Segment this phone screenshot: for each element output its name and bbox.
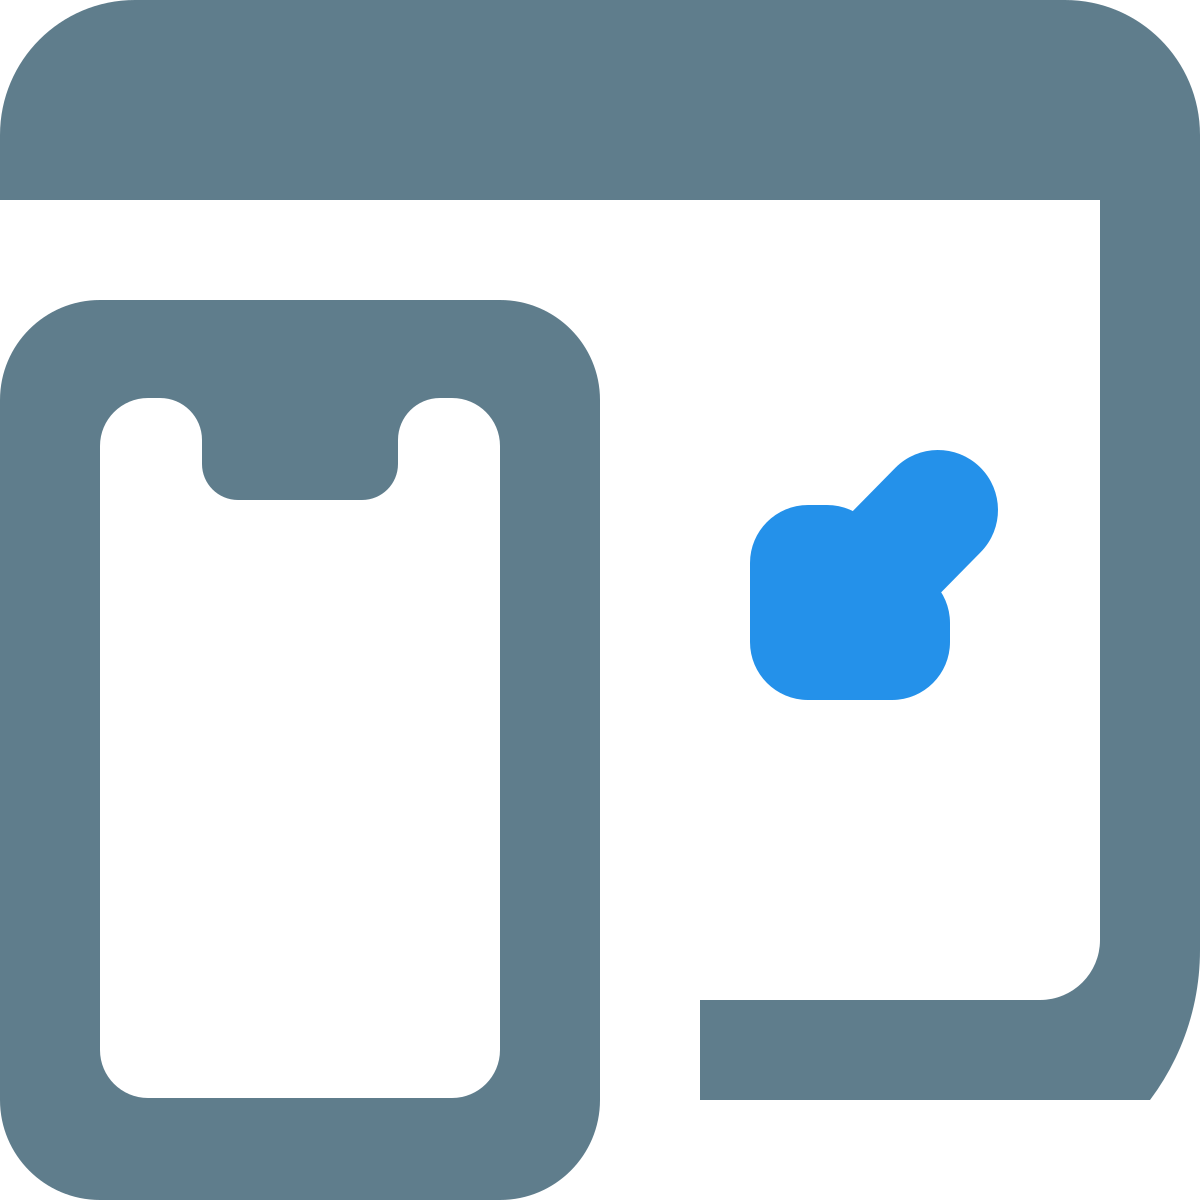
button[interactable]: Send to iPhone bbox=[0, 0, 1200, 1200]
